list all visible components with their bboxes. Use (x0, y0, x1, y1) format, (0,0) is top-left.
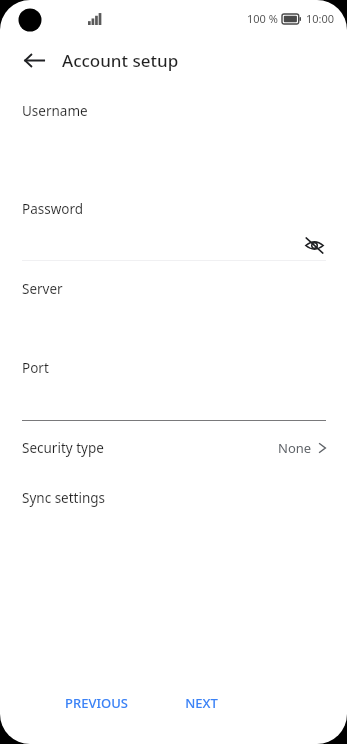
staticText: Port (22, 359, 49, 377)
staticText: Username (22, 102, 88, 120)
staticText: Server (22, 280, 63, 298)
button[interactable]: PREVIOUS (46, 686, 146, 720)
staticText: PREVIOUS (65, 694, 128, 712)
button[interactable]: Back (12, 38, 56, 82)
button[interactable]: Password (0, 194, 347, 260)
button[interactable]: Security type (0, 428, 347, 468)
button[interactable]: Server (0, 274, 347, 326)
staticText: Security type (22, 439, 104, 457)
staticText: Sync settings (22, 489, 106, 507)
staticText: None (278, 439, 312, 457)
button[interactable]: NEXT (158, 686, 244, 720)
staticText: 100 % (247, 11, 278, 26)
staticText: Account setup (62, 49, 179, 72)
staticText: 10:00 (306, 11, 335, 26)
button[interactable]: Port (0, 353, 347, 405)
staticText: NEXT (185, 694, 218, 712)
button[interactable]: Username (0, 96, 347, 146)
staticText: Password (22, 200, 84, 218)
button[interactable]: Sync settings (0, 478, 347, 518)
button[interactable]: Show password (294, 228, 334, 262)
